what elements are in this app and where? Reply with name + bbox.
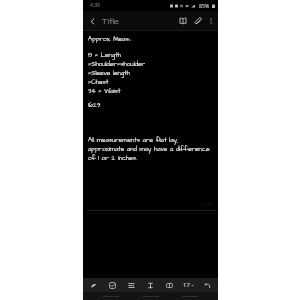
button[interactable]: Back (178, 292, 202, 300)
staticText: 4:39 (90, 2, 100, 9)
staticText: =Sleeve length (88, 69, 130, 78)
staticText: =Chest (88, 78, 109, 87)
button[interactable]: Insert (161, 278, 178, 292)
button[interactable]: Text style (142, 278, 159, 292)
button[interactable]: Pen (85, 278, 102, 292)
staticText: 13 = Length (88, 51, 122, 60)
button[interactable]: Undo (199, 278, 216, 292)
staticText: Approx. Meas.: (88, 35, 131, 44)
staticText: Title (102, 15, 119, 28)
button[interactable]: Font size (180, 278, 197, 292)
button[interactable]: Recents (99, 292, 123, 300)
staticText: 17 (183, 281, 190, 289)
button[interactable]: More options (205, 11, 216, 31)
staticText: 1629 (88, 101, 101, 110)
staticText: All measurements are flat lay, approxima… (88, 136, 210, 163)
button[interactable]: Navigate up (86, 11, 99, 31)
staticText: 34 = Waist (88, 87, 121, 96)
button[interactable]: Reading mode (175, 11, 190, 31)
staticText: 85% (199, 2, 210, 9)
staticText: 1629 (201, 202, 213, 209)
button[interactable]: Paragraph style (123, 278, 140, 292)
staticText: =Shoulder=shoulder (88, 60, 146, 69)
button[interactable]: Attach file (190, 11, 205, 31)
button[interactable]: Home (139, 292, 163, 300)
button[interactable]: Checklist (104, 278, 121, 292)
